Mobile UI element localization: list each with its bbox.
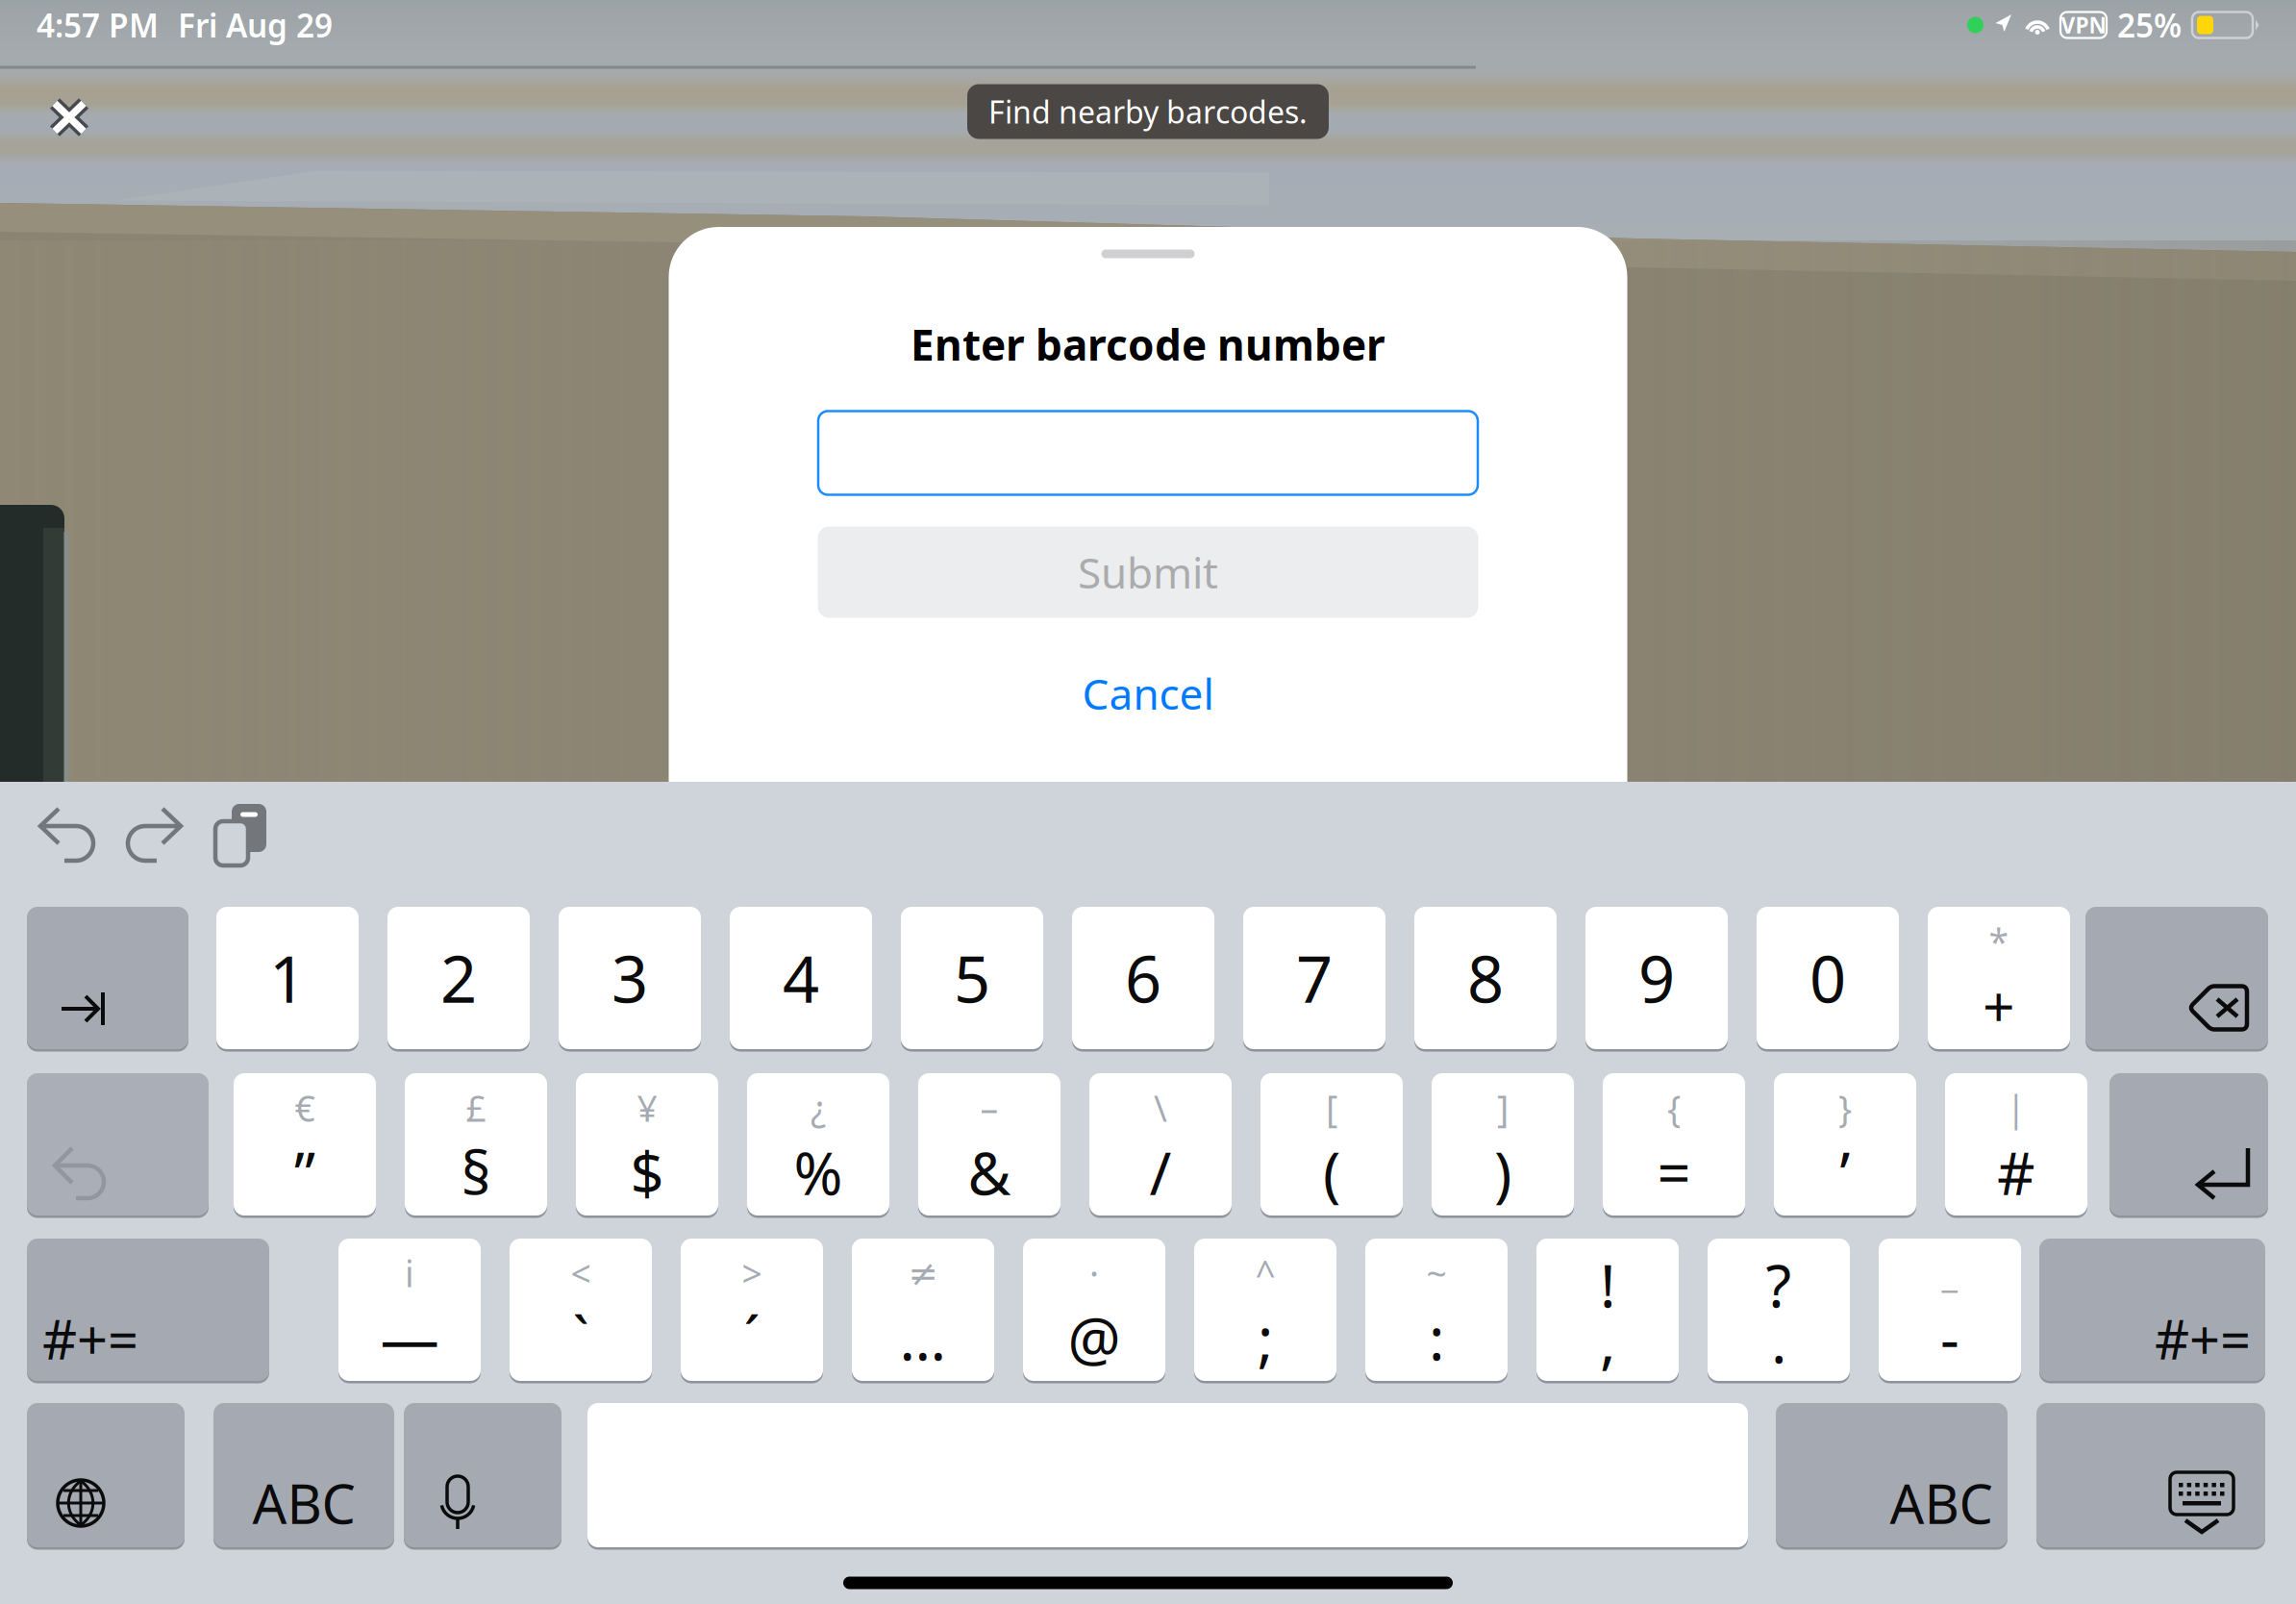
button[interactable]: Redo bbox=[122, 803, 186, 866]
button[interactable]: ] bbox=[1432, 1073, 1574, 1216]
staticText: 8 bbox=[1467, 935, 1504, 1020]
staticText: * bbox=[1989, 918, 2009, 965]
staticText: | bbox=[2006, 1084, 2026, 1132]
staticText: ( bbox=[1323, 1133, 1340, 1211]
staticText: Fri Aug 29 bbox=[178, 4, 333, 46]
button[interactable]: · bbox=[1023, 1239, 1165, 1381]
staticText: 2 bbox=[440, 935, 477, 1020]
staticText: ; bbox=[1258, 1298, 1273, 1377]
staticText: } bbox=[1838, 1084, 1852, 1132]
staticText: , bbox=[1600, 1301, 1615, 1380]
staticText: @ bbox=[1068, 1298, 1121, 1377]
staticText: 7 bbox=[1296, 935, 1333, 1020]
staticText: _ bbox=[1942, 1249, 1958, 1297]
button[interactable]: ¥ bbox=[576, 1073, 718, 1216]
button[interactable]: 5 bbox=[901, 907, 1043, 1049]
button[interactable]: £ bbox=[405, 1073, 547, 1216]
staticText: { bbox=[1667, 1084, 1681, 1132]
staticText: 25% bbox=[2117, 4, 2182, 46]
staticText: # bbox=[1997, 1133, 2035, 1211]
button[interactable]: Return bbox=[0, 782, 2296, 1604]
staticText: ´ bbox=[744, 1298, 760, 1377]
button[interactable]: | bbox=[1945, 1073, 2087, 1216]
staticText: = bbox=[1657, 1133, 1691, 1211]
staticText: > bbox=[742, 1249, 762, 1297]
staticText: + bbox=[1983, 968, 2015, 1043]
button[interactable]: – bbox=[918, 1073, 1061, 1216]
staticText: 0 bbox=[1809, 935, 1846, 1020]
staticText: ¥ bbox=[637, 1084, 657, 1132]
button[interactable]: € bbox=[234, 1073, 376, 1216]
staticText: 3 bbox=[611, 935, 648, 1020]
staticText: Find nearby barcodes. bbox=[988, 91, 1308, 132]
staticText: \ bbox=[1154, 1084, 1167, 1132]
button[interactable]: 4 bbox=[730, 907, 872, 1049]
button[interactable]: } bbox=[1774, 1073, 1916, 1216]
staticText: % bbox=[794, 1133, 843, 1211]
button[interactable]: 0 bbox=[1757, 907, 1899, 1049]
staticText: § bbox=[461, 1133, 491, 1211]
button[interactable]: Undo bbox=[36, 803, 99, 866]
button[interactable]: ! bbox=[1536, 1239, 1679, 1381]
staticText: Cancel bbox=[1082, 665, 1214, 721]
button[interactable]: Submit bbox=[818, 526, 1478, 618]
button[interactable]: 7 bbox=[1243, 907, 1385, 1049]
staticText: ! bbox=[1600, 1246, 1615, 1324]
staticText: . bbox=[1771, 1301, 1786, 1380]
staticText: ^ bbox=[1255, 1249, 1275, 1297]
button[interactable]: 9 bbox=[1585, 907, 1728, 1049]
button[interactable]: #+= bbox=[0, 782, 2296, 1604]
staticText: i bbox=[405, 1249, 414, 1297]
button[interactable]: Tab bbox=[0, 782, 2296, 1604]
staticText: € bbox=[295, 1084, 315, 1132]
button[interactable]: Close bbox=[26, 74, 112, 161]
button[interactable]: Switch keyboard bbox=[0, 782, 2296, 1604]
button[interactable]: Delete bbox=[0, 782, 2296, 1604]
button[interactable]: ? bbox=[1708, 1239, 1850, 1381]
staticText: $ bbox=[630, 1133, 664, 1211]
staticText: 4 bbox=[783, 935, 819, 1020]
staticText: ] bbox=[1497, 1084, 1509, 1132]
button[interactable]: i bbox=[338, 1239, 481, 1381]
button[interactable]: \ bbox=[1089, 1073, 1232, 1216]
staticText: VPN bbox=[2061, 10, 2106, 39]
button[interactable]: Dictate bbox=[0, 782, 2296, 1604]
staticText: — bbox=[380, 1298, 439, 1377]
staticText: ` bbox=[573, 1298, 589, 1377]
button[interactable]: 2 bbox=[387, 907, 530, 1049]
staticText: #+= bbox=[42, 1303, 138, 1374]
button[interactable]: ABC bbox=[0, 782, 2296, 1604]
button[interactable]: ABC bbox=[0, 782, 2296, 1604]
button[interactable]: { bbox=[1603, 1073, 1745, 1216]
button[interactable]: 1 bbox=[216, 907, 359, 1049]
button[interactable]: > bbox=[681, 1239, 823, 1381]
button[interactable]: Hide keyboard bbox=[0, 782, 2296, 1604]
button[interactable]: Undo bbox=[0, 782, 2296, 1604]
button[interactable]: [ bbox=[1260, 1073, 1403, 1216]
button[interactable]: ~ bbox=[1365, 1239, 1508, 1381]
button[interactable]: 8 bbox=[1414, 907, 1557, 1049]
staticText: ABC bbox=[252, 1467, 355, 1539]
staticText: & bbox=[968, 1133, 1011, 1211]
staticText: 4:57 PM bbox=[37, 4, 159, 46]
staticText: · bbox=[1089, 1249, 1099, 1297]
button[interactable]: < bbox=[510, 1239, 652, 1381]
staticText: ¿ bbox=[811, 1084, 826, 1132]
staticText: 1 bbox=[269, 935, 306, 1020]
button[interactable]: 6 bbox=[1072, 907, 1214, 1049]
button[interactable]: 3 bbox=[559, 907, 701, 1049]
staticText: ” bbox=[294, 1133, 315, 1211]
button[interactable]: ¿ bbox=[747, 1073, 889, 1216]
staticText: < bbox=[571, 1249, 591, 1297]
staticText: ? bbox=[1766, 1246, 1792, 1324]
button[interactable]: Paste bbox=[209, 803, 272, 866]
button[interactable]: ≠ bbox=[852, 1239, 994, 1381]
button[interactable]: Cancel bbox=[989, 663, 1307, 724]
button[interactable]: _ bbox=[1879, 1239, 2021, 1381]
button[interactable]: Space bbox=[0, 782, 2296, 1604]
button[interactable]: #+= bbox=[0, 782, 2296, 1604]
staticText: ) bbox=[1494, 1133, 1511, 1211]
button[interactable]: ^ bbox=[1194, 1239, 1336, 1381]
staticText: 5 bbox=[954, 935, 990, 1020]
button[interactable]: * bbox=[1928, 907, 2070, 1049]
